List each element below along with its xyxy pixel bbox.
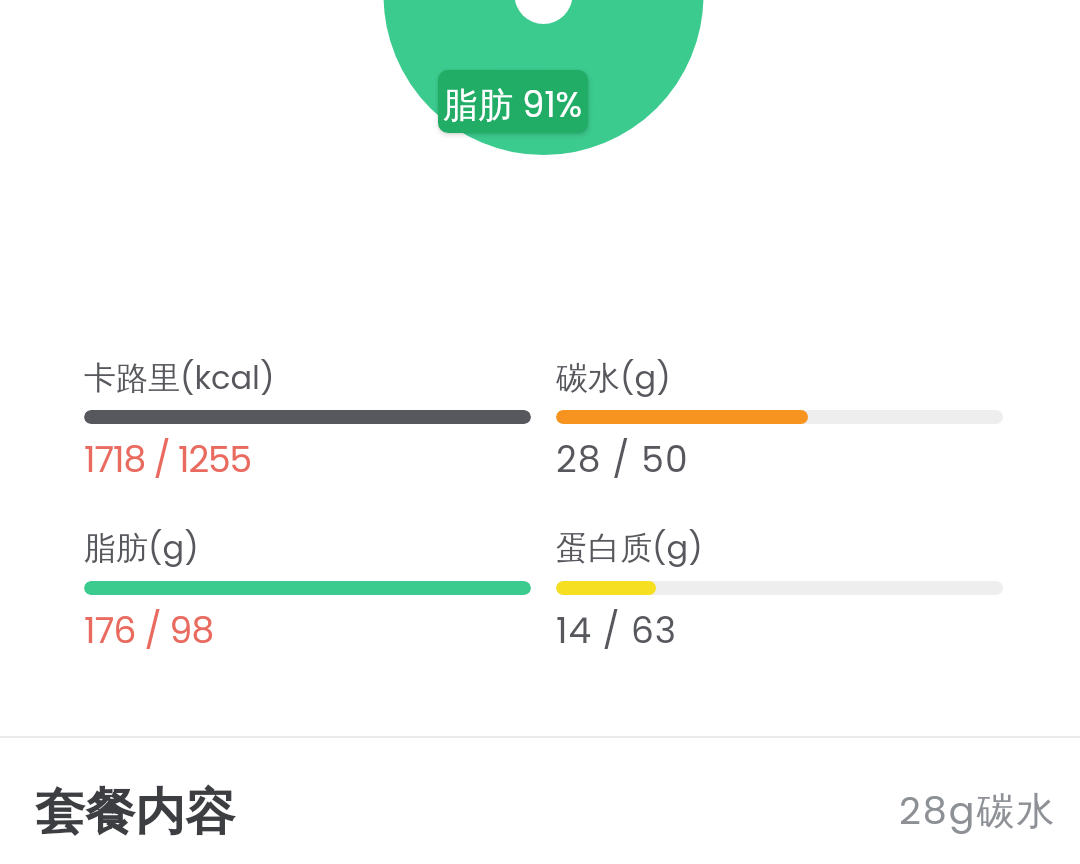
staticText: 28g碳水 bbox=[899, 784, 1057, 837]
staticText: 176 / 98 bbox=[84, 605, 214, 655]
staticText: 28 / 50 bbox=[556, 434, 689, 484]
staticText: 卡路里(kcal) bbox=[84, 355, 275, 400]
staticText: 1718 / 1255 bbox=[84, 434, 252, 484]
staticText: 脂肪(g) bbox=[84, 525, 199, 570]
staticText: 碳水(g) bbox=[556, 355, 671, 400]
staticText: 蛋白质(g) bbox=[556, 525, 703, 570]
button[interactable]: 脂肪 91% bbox=[438, 70, 588, 133]
button[interactable]: 套餐内容 bbox=[0, 781, 1080, 844]
staticText: 14 / 63 bbox=[556, 605, 677, 655]
staticText: 套餐内容 bbox=[35, 781, 235, 844]
staticText: 脂肪 91% bbox=[443, 80, 583, 129]
